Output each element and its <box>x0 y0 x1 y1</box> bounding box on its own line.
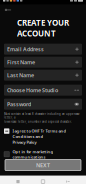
staticText: Last Name <box>7 72 34 79</box>
button[interactable]: Choose Home Studio <box>4 85 82 96</box>
button[interactable]: Password <box>4 99 82 110</box>
button[interactable]: I agree to OHF Tr Terms and Conditions a… <box>4 128 82 145</box>
button[interactable]: Email Address <box>4 44 82 55</box>
staticText: lowercase letter, a number and a special… <box>4 120 72 123</box>
button[interactable]: Opt in for marketing communications <box>4 149 82 159</box>
staticText: Choose Home Studio <box>7 87 58 94</box>
staticText: I agree to OHF Tr Terms and Conditions a… <box>12 128 66 139</box>
staticText: Password <box>7 101 31 108</box>
staticText: Opt in for marketing communications <box>12 149 53 159</box>
button[interactable]: Last Name <box>4 70 82 81</box>
button[interactable]: Recent apps <box>11 176 25 184</box>
button[interactable]: NEXT <box>5 160 81 171</box>
button[interactable]: First Name <box>4 57 82 68</box>
staticText: NEXT <box>36 161 50 169</box>
staticText: First Name <box>7 59 35 66</box>
button[interactable]: Home <box>36 176 50 184</box>
staticText: Email Address <box>7 46 44 53</box>
staticText: Must contain at least 8 character includ… <box>4 112 80 119</box>
button[interactable]: Back <box>61 176 75 184</box>
staticText: Privacy Policy <box>12 140 36 145</box>
button[interactable]: Back <box>2 4 14 15</box>
staticText: CREATE YOUR ACCOUNT <box>17 17 69 39</box>
